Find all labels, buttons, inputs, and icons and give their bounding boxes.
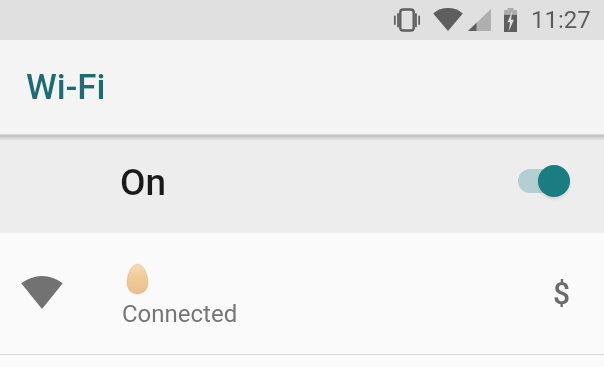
button[interactable]: On [0,140,604,233]
other: Wi-Fi enabled [518,164,572,198]
other: Signal strength [21,276,63,309]
staticText: $ [553,276,571,311]
button[interactable]: Signal strength [0,233,604,354]
staticText: Wi-Fi [26,67,106,108]
staticText: 11:27 [531,6,591,34]
other: Network name [127,264,148,294]
staticText: Connected [122,300,238,328]
staticText: On [120,161,167,204]
